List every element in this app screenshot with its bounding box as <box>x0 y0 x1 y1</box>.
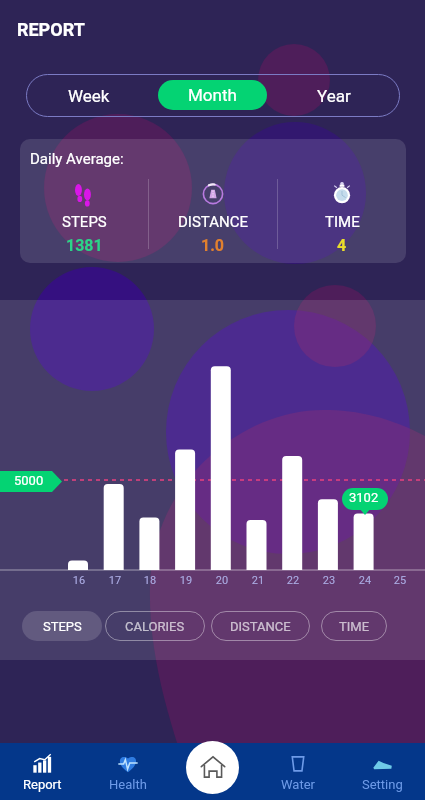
staticText: 17 <box>106 574 124 587</box>
staticText: 1.0 <box>201 236 225 255</box>
button[interactable]: Year <box>274 74 394 117</box>
button[interactable]: CALORIES <box>105 611 205 641</box>
button[interactable]: DISTANCE <box>211 611 310 641</box>
staticText: TIME <box>339 619 370 634</box>
button[interactable]: Water <box>255 743 340 800</box>
staticText: Health <box>109 777 147 792</box>
staticText: 23 <box>320 574 338 587</box>
staticText: 22 <box>284 574 302 587</box>
button[interactable]: Week <box>29 74 149 117</box>
staticText: STEPS <box>62 213 107 231</box>
staticText: Year <box>317 86 351 106</box>
staticText: 20 <box>213 574 231 587</box>
staticText: 3102 <box>349 490 379 505</box>
button[interactable]: TIME <box>321 611 387 641</box>
staticText: 24 <box>356 574 374 587</box>
button[interactable]: Home <box>186 741 239 794</box>
staticText: 1381 <box>66 236 103 255</box>
staticText: 21 <box>249 574 267 587</box>
staticText: TIME <box>325 213 360 231</box>
staticText: 5000 <box>14 473 44 488</box>
button[interactable]: STEPS <box>22 611 102 641</box>
staticText: CALORIES <box>125 619 185 634</box>
button[interactable]: Month <box>158 80 267 110</box>
staticText: 16 <box>70 574 88 587</box>
staticText: Water <box>281 777 315 792</box>
staticText: Month <box>188 85 237 105</box>
staticText: Week <box>68 86 110 106</box>
button[interactable]: Setting <box>340 743 425 800</box>
staticText: REPORT <box>17 19 85 40</box>
staticText: 25 <box>391 574 409 587</box>
staticText: 4 <box>337 236 347 255</box>
staticText: Report <box>23 777 62 792</box>
button[interactable]: Health <box>85 743 170 800</box>
staticText: DISTANCE <box>230 619 291 634</box>
staticText: 19 <box>177 574 195 587</box>
staticText: STEPS <box>43 619 82 634</box>
staticText: 18 <box>141 574 159 587</box>
staticText: Daily Average: <box>30 150 124 168</box>
button[interactable]: Report <box>0 743 85 800</box>
staticText: Setting <box>362 777 403 792</box>
staticText: DISTANCE <box>178 213 248 231</box>
